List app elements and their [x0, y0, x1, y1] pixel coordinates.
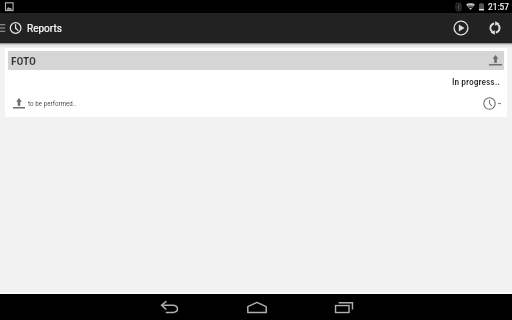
- button[interactable]: FOTO: [5, 48, 507, 117]
- button[interactable]: Back: [145, 294, 194, 320]
- staticText: In progress..: [452, 76, 501, 87]
- button[interactable]: FOTO: [8, 51, 504, 70]
- button[interactable]: Recent apps: [319, 294, 368, 320]
- staticText: Reports: [27, 23, 62, 35]
- button[interactable]: Start: [444, 13, 478, 43]
- staticText: FOTO: [11, 54, 36, 67]
- button[interactable]: Home: [232, 294, 281, 320]
- button[interactable]: Upload FOTO report: [485, 51, 504, 70]
- button[interactable]: Open navigation drawer: [0, 13, 26, 43]
- staticText: to be performed..: [28, 99, 77, 107]
- button[interactable]: Refresh: [478, 13, 512, 43]
- staticText: 21:57: [488, 1, 509, 12]
